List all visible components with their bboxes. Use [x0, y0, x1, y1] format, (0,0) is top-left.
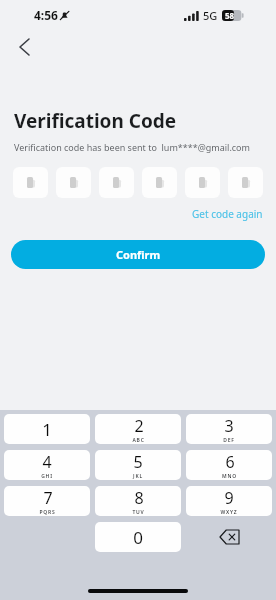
staticText: GHI: [41, 473, 53, 480]
button[interactable]: Get code again: [188, 204, 267, 224]
button[interactable]: 1: [4, 414, 90, 444]
staticText: 5G: [203, 8, 218, 23]
button[interactable]: [56, 167, 91, 198]
staticText: WXYZ: [220, 509, 238, 516]
button[interactable]: 5: [95, 450, 181, 480]
button[interactable]: Confirm: [11, 240, 265, 269]
staticText: 4: [42, 451, 52, 473]
button[interactable]: 2: [95, 414, 181, 444]
button[interactable]: Delete: [186, 522, 272, 552]
button[interactable]: Back: [9, 32, 39, 62]
button[interactable]: 7: [4, 486, 90, 516]
staticText: 4:56: [34, 7, 58, 23]
staticText: 5: [133, 451, 143, 473]
staticText: 58: [225, 10, 235, 21]
staticText: Verification code has been sent to lum**…: [14, 141, 250, 153]
staticText: 6: [225, 451, 235, 473]
staticText: Verification Code: [14, 108, 177, 134]
staticText: 0: [133, 526, 143, 549]
button[interactable]: [13, 167, 48, 198]
staticText: Get code again: [192, 207, 263, 221]
staticText: 8: [134, 487, 144, 509]
staticText: JKL: [133, 473, 143, 480]
button[interactable]: 3: [186, 414, 272, 444]
staticText: ABC: [132, 437, 145, 444]
staticText: 1: [42, 418, 52, 441]
button[interactable]: 4: [4, 450, 90, 480]
staticText: Confirm: [116, 247, 161, 262]
staticText: 7: [43, 487, 53, 509]
staticText: TUV: [132, 509, 145, 516]
button[interactable]: [228, 167, 263, 198]
button[interactable]: [99, 167, 134, 198]
staticText: PQRS: [39, 509, 56, 516]
staticText: 3: [224, 415, 234, 437]
staticText: 2: [134, 415, 144, 437]
staticText: MNO: [222, 473, 237, 480]
staticText: 9: [224, 487, 234, 509]
button[interactable]: 9: [186, 486, 272, 516]
button[interactable]: [142, 167, 177, 198]
button[interactable]: 8: [95, 486, 181, 516]
button[interactable]: [185, 167, 220, 198]
staticText: DEF: [223, 437, 235, 444]
button[interactable]: 6: [186, 450, 272, 480]
button[interactable]: 0: [95, 522, 181, 552]
